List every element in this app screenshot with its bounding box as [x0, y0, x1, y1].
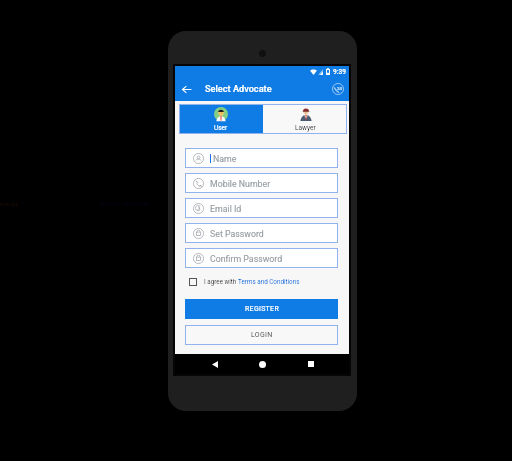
- staticText: User: [214, 124, 228, 132]
- button[interactable]: Name: [185, 148, 338, 168]
- button[interactable]: Recent apps: [301, 354, 321, 374]
- staticText: Select Advocate: [205, 83, 272, 94]
- button[interactable]: Lawyer: [263, 104, 347, 134]
- button[interactable]: Confirm Password: [185, 248, 338, 268]
- button[interactable]: Back: [205, 354, 225, 374]
- staticText: Mobile Number: [210, 179, 271, 189]
- staticText: I agree with: [204, 278, 238, 285]
- staticText: Name: [213, 154, 237, 164]
- staticText: REGISTER: [245, 305, 279, 313]
- button[interactable]: User: [179, 104, 263, 134]
- button[interactable]: REGISTER: [185, 299, 338, 319]
- button[interactable]: 24 hour support: [330, 81, 346, 97]
- staticText: 24: [337, 86, 343, 91]
- button[interactable]: Email Id: [185, 198, 338, 218]
- staticText: Lawyer: [295, 124, 316, 132]
- staticText: Email Id: [210, 204, 242, 214]
- staticText: Set Password: [210, 229, 264, 239]
- staticText: Confirm Password: [210, 254, 283, 264]
- staticText: LOGIN: [251, 331, 273, 339]
- button[interactable]: Agree to terms checkbox: [189, 278, 197, 286]
- staticText: grow.app: [0, 201, 19, 207]
- button[interactable]: Back: [178, 81, 194, 97]
- button[interactable]: Mobile Number: [185, 173, 338, 193]
- button[interactable]: Terms and Conditions: [238, 278, 300, 285]
- staticText: Terms and Conditions: [238, 278, 300, 285]
- staticText: 9:39: [333, 68, 346, 76]
- button[interactable]: LOGIN: [185, 325, 338, 345]
- button[interactable]: Set Password: [185, 223, 338, 243]
- staticText: advocate online portal: [100, 201, 150, 207]
- button[interactable]: Home: [252, 354, 272, 374]
